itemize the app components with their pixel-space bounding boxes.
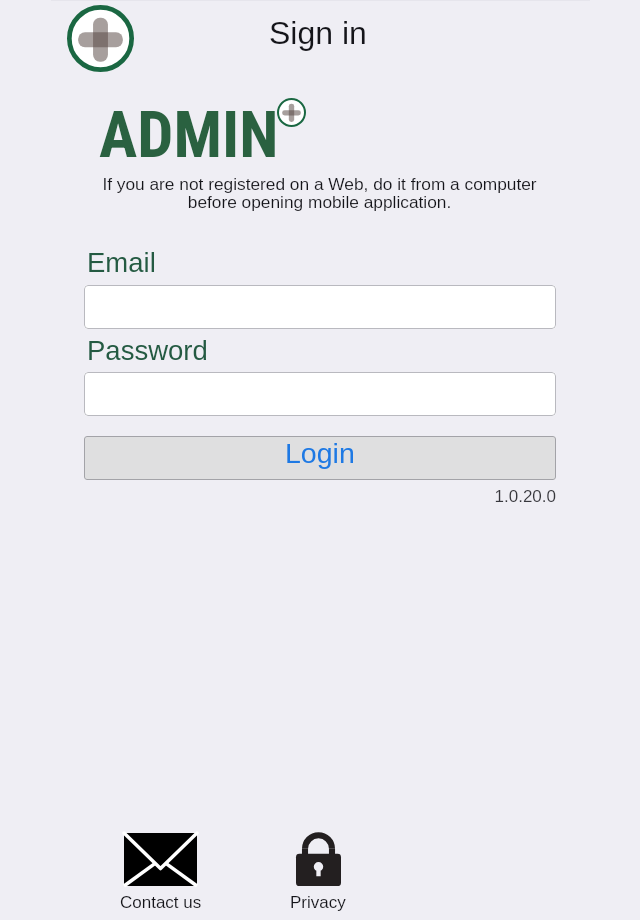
button[interactable]: Password input	[84, 372, 556, 416]
button[interactable]: Email input	[84, 285, 556, 329]
button[interactable]: Open menu	[67, 5, 134, 72]
staticText: Privacy	[290, 893, 346, 912]
staticText: Email	[87, 247, 156, 278]
staticText: ADMIN	[99, 98, 279, 173]
staticText: If you are not registered on a Web, do i…	[88, 174, 551, 211]
staticText: Sign in	[269, 15, 367, 51]
staticText: Contact us	[120, 893, 202, 912]
button[interactable]: Contact us	[80, 833, 241, 912]
staticText: Login	[285, 437, 355, 469]
button[interactable]: Login	[84, 436, 556, 480]
staticText: 1.0.20.0	[356, 487, 556, 506]
staticText: Password	[87, 335, 208, 366]
button[interactable]: Privacy	[238, 832, 398, 912]
